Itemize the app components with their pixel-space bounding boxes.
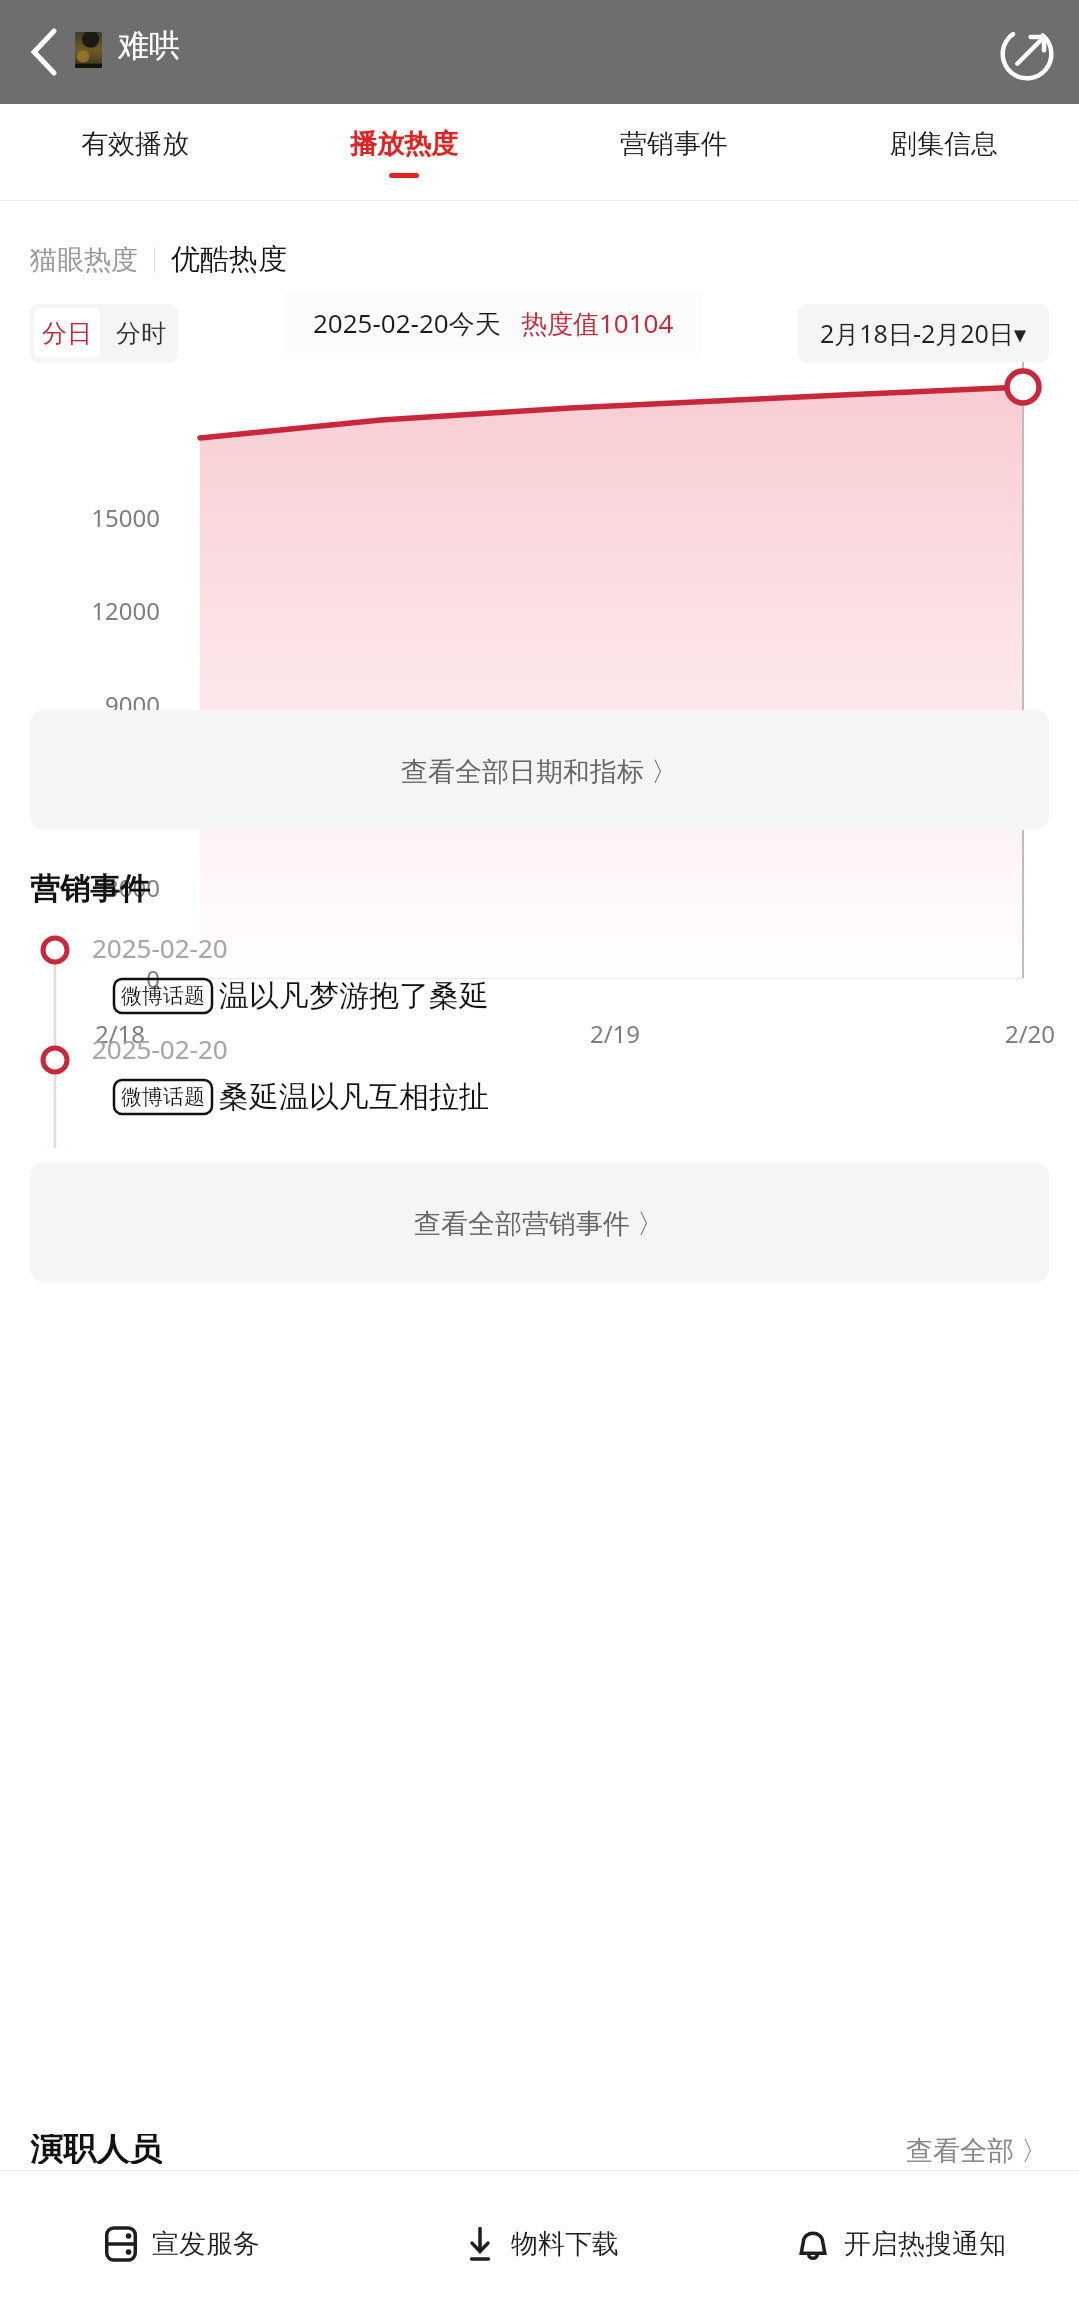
button[interactable]: 查看全部营销事件 〉 bbox=[30, 1162, 1049, 1282]
staticText: 2025-02-20今天 bbox=[313, 305, 501, 341]
button[interactable]: Back bbox=[10, 21, 72, 83]
button[interactable]: 剧集信息 bbox=[809, 104, 1079, 200]
button[interactable]: 分日 bbox=[34, 308, 100, 358]
staticText: 9000 bbox=[0, 688, 160, 721]
button[interactable]: 营销事件 bbox=[539, 104, 809, 200]
staticText: 2025-02-20 bbox=[92, 930, 228, 965]
staticText: 营销事件 bbox=[620, 127, 728, 161]
button[interactable]: 查看全部 〉 bbox=[906, 2134, 1049, 2170]
staticText: 2/19 bbox=[570, 1017, 660, 1050]
staticText: 剧集信息 bbox=[890, 127, 998, 161]
button[interactable]: 查看全部日期和指标 〉 bbox=[30, 710, 1049, 830]
staticText: 桑延温以凡互相拉扯 bbox=[219, 1078, 489, 1116]
button[interactable]: 开启热搜通知 bbox=[719, 2171, 1079, 2316]
staticText: 0 bbox=[0, 962, 160, 995]
staticText: 2025-02-20 bbox=[92, 1031, 228, 1066]
button[interactable]: 有效播放 bbox=[0, 104, 269, 200]
staticText: 物料下载 bbox=[511, 2227, 619, 2261]
staticText: 2/20 bbox=[985, 1017, 1075, 1050]
staticText: 12000 bbox=[0, 594, 160, 627]
button[interactable]: 分时 bbox=[104, 304, 178, 362]
staticText: 6000 bbox=[0, 778, 160, 811]
button[interactable]: Share bbox=[995, 20, 1059, 84]
button[interactable]: 猫眼热度 bbox=[30, 243, 138, 277]
staticText: 查看全部营销事件 〉 bbox=[414, 1204, 665, 1241]
staticText: 查看全部日期和指标 〉 bbox=[401, 752, 679, 789]
staticText: 微博话题 bbox=[121, 1084, 205, 1110]
button[interactable]: 物料下载 bbox=[359, 2171, 719, 2316]
staticText: 分时 bbox=[116, 318, 166, 349]
button[interactable]: 宣发服务 bbox=[0, 2171, 359, 2316]
staticText: 难哄 bbox=[118, 26, 180, 65]
staticText: 营销事件 bbox=[30, 870, 150, 908]
staticText: 演职人员 bbox=[30, 2134, 162, 2164]
staticText: 15000 bbox=[0, 501, 160, 534]
staticText: 查看全部 〉 bbox=[906, 2134, 1049, 2167]
staticText: 分日 bbox=[42, 318, 92, 349]
staticText: 播放热度 bbox=[350, 127, 458, 161]
staticText: 微博话题 bbox=[121, 983, 205, 1009]
staticText: 3000 bbox=[0, 871, 160, 904]
staticText: 温以凡梦游抱了桑延 bbox=[219, 977, 489, 1015]
staticText: 有效播放 bbox=[81, 127, 189, 161]
staticText: 宣发服务 bbox=[152, 2227, 260, 2261]
staticText: 热度值10104 bbox=[521, 305, 674, 341]
staticText: 开启热搜通知 bbox=[844, 2227, 1006, 2261]
staticText: 2月18日-2月20日▾ bbox=[820, 316, 1027, 350]
staticText: 2/18 bbox=[75, 1017, 165, 1050]
button[interactable]: 优酷热度 bbox=[171, 241, 287, 278]
button[interactable]: 2025-02-20 bbox=[92, 1031, 1079, 1116]
button[interactable]: 2025-02-20 bbox=[92, 930, 1079, 1015]
button[interactable]: 2月18日-2月20日▾ bbox=[798, 304, 1049, 362]
button[interactable]: 播放热度 bbox=[269, 104, 539, 200]
